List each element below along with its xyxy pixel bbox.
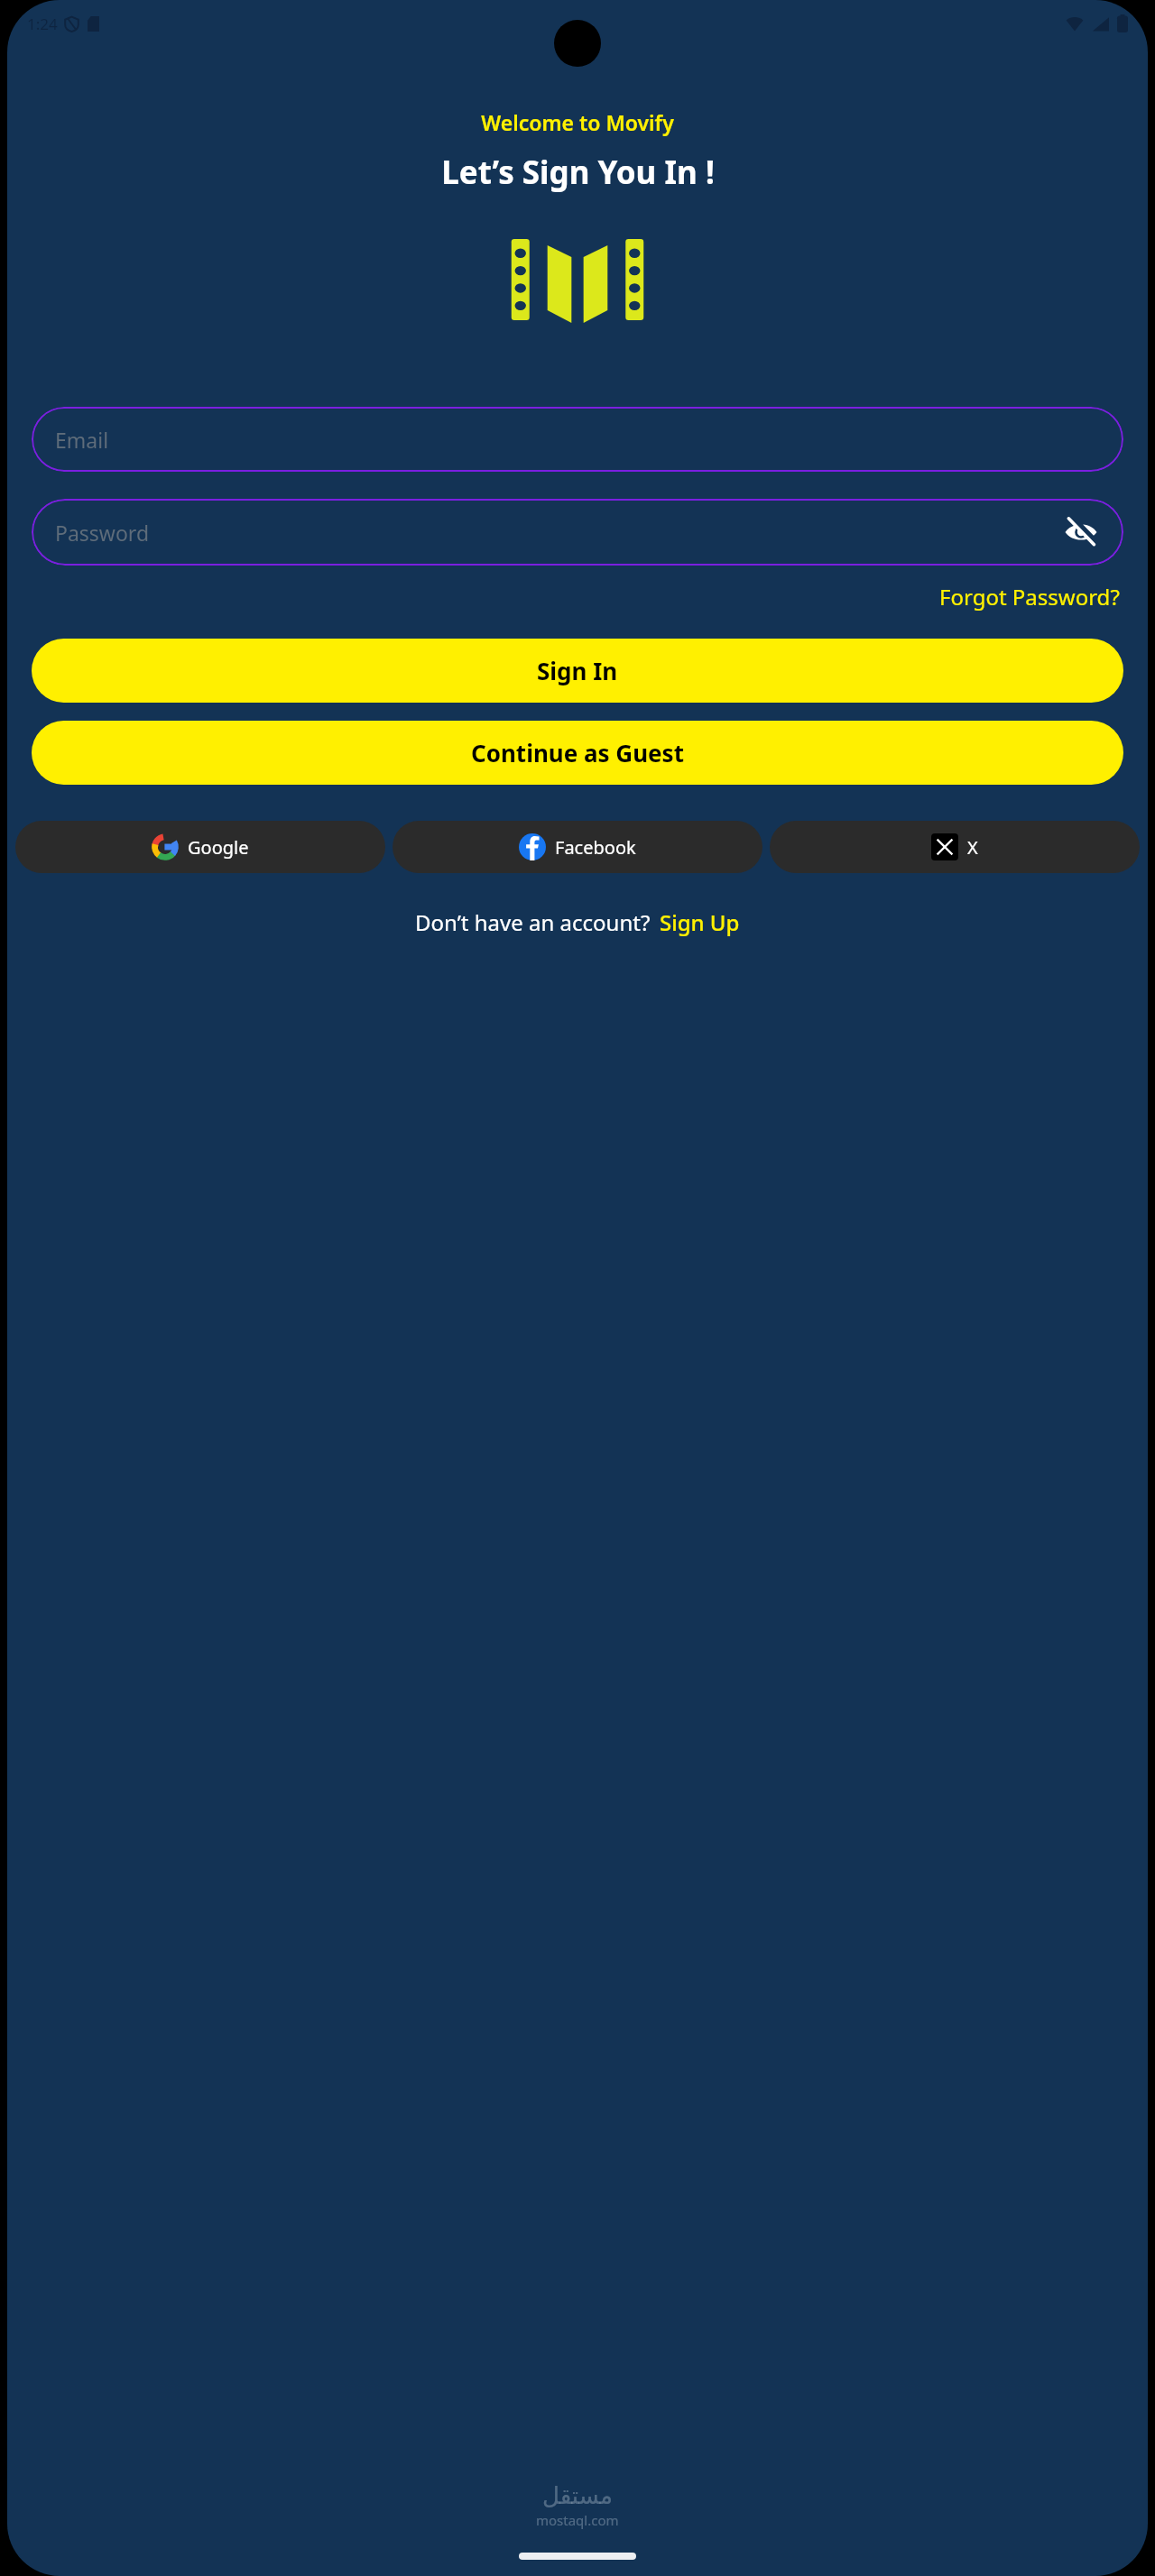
staticText: Sign In [537, 655, 618, 686]
button[interactable]: Sign Up [660, 907, 740, 937]
staticText: Welcome to Movify [481, 108, 674, 136]
staticText: Facebook [555, 835, 636, 860]
button[interactable]: Google [15, 821, 385, 873]
button[interactable]: Email [32, 407, 1123, 472]
button[interactable]: Continue as Guest [32, 721, 1123, 785]
button[interactable]: Facebook [393, 821, 762, 873]
staticText: mostaql.com [536, 2511, 619, 2529]
staticText: Password [55, 519, 150, 547]
button[interactable]: X [770, 821, 1140, 873]
staticText: مستقل [542, 2482, 613, 2509]
staticText: Sign Up [660, 907, 740, 937]
staticText: Email [55, 426, 109, 454]
staticText: Google [188, 835, 249, 860]
staticText: 1:24 [27, 14, 58, 34]
button[interactable]: Forgot Password? [936, 575, 1123, 619]
staticText: Forgot Password? [939, 582, 1120, 612]
staticText: Don’t have an account? [415, 907, 651, 937]
staticText: X [967, 835, 978, 860]
staticText: Let’s Sign You In ! [441, 151, 715, 194]
button[interactable]: Sign In [32, 639, 1123, 703]
button[interactable]: Password [32, 499, 1123, 566]
button[interactable]: Show password [1060, 511, 1102, 553]
staticText: Continue as Guest [471, 737, 684, 768]
